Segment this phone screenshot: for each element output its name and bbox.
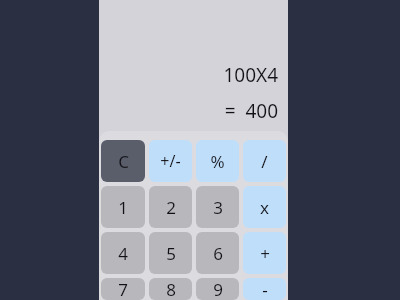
button[interactable]: % <box>196 140 239 182</box>
staticText: = 400 <box>224 98 278 124</box>
staticText: % <box>210 150 225 173</box>
staticText: 4 <box>118 242 128 265</box>
staticText: - <box>262 278 268 300</box>
staticText: 6 <box>213 242 223 265</box>
button[interactable]: C <box>101 140 145 182</box>
button[interactable]: 8 <box>149 278 192 300</box>
staticText: 100X4 <box>223 62 278 88</box>
staticText: 3 <box>213 196 223 219</box>
staticText: / <box>261 150 268 173</box>
button[interactable]: + <box>243 232 286 274</box>
button[interactable]: 5 <box>149 232 192 274</box>
button[interactable]: 7 <box>101 278 145 300</box>
button[interactable]: - <box>243 278 286 300</box>
staticText: +/- <box>160 150 181 172</box>
staticText: 9 <box>213 278 223 300</box>
staticText: C <box>118 150 129 173</box>
button[interactable]: 1 <box>101 186 145 228</box>
button[interactable]: 4 <box>101 232 145 274</box>
button[interactable]: +/- <box>149 140 192 182</box>
button[interactable]: 3 <box>196 186 239 228</box>
staticText: 7 <box>118 278 128 300</box>
button[interactable]: 6 <box>196 232 239 274</box>
staticText: 5 <box>166 242 176 265</box>
staticText: 8 <box>166 278 176 300</box>
button[interactable]: 2 <box>149 186 192 228</box>
button[interactable]: 9 <box>196 278 239 300</box>
button[interactable]: / <box>243 140 286 182</box>
staticText: 2 <box>166 196 176 219</box>
button[interactable]: x <box>243 186 286 228</box>
staticText: x <box>260 196 269 219</box>
staticText: 1 <box>118 196 128 219</box>
staticText: + <box>260 242 270 265</box>
